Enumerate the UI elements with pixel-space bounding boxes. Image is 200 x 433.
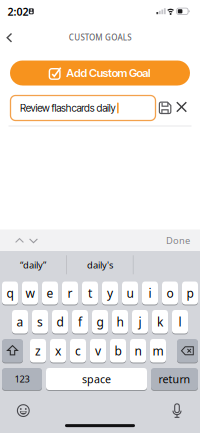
- button[interactable]: Shift: [2, 338, 23, 363]
- button[interactable]: daily's: [70, 255, 130, 275]
- button[interactable]: m: [150, 338, 166, 363]
- staticText: Add Custom Goal: [66, 66, 151, 80]
- button[interactable]: s: [32, 309, 48, 334]
- staticText: l: [178, 314, 181, 330]
- button[interactable]: q: [2, 281, 18, 305]
- button[interactable]: v: [90, 338, 106, 363]
- staticText: e: [46, 285, 53, 301]
- button[interactable]: a: [12, 309, 28, 334]
- staticText: c: [75, 343, 81, 359]
- staticText: h: [116, 314, 123, 330]
- button[interactable]: o: [162, 281, 178, 305]
- button[interactable]: Back: [4, 29, 16, 46]
- staticText: b: [114, 343, 121, 359]
- staticText: daily's: [87, 259, 113, 271]
- staticText: space: [82, 372, 111, 386]
- staticText: g: [96, 314, 103, 330]
- staticText: d: [56, 314, 63, 330]
- button[interactable]: l: [172, 309, 188, 334]
- button[interactable]: space: [46, 367, 147, 390]
- button[interactable]: return: [151, 367, 198, 390]
- button[interactable]: e: [42, 281, 58, 305]
- button[interactable]: y: [102, 281, 118, 305]
- staticText: y: [107, 285, 113, 301]
- staticText: j: [138, 314, 141, 330]
- button[interactable]: Cancel: [176, 101, 187, 112]
- staticText: “daily”: [20, 259, 46, 271]
- button[interactable]: f: [72, 309, 88, 334]
- button[interactable]: g: [92, 309, 108, 334]
- staticText: Review flashcards daily: [20, 102, 116, 114]
- button[interactable]: r: [62, 281, 78, 305]
- button[interactable]: t: [82, 281, 98, 305]
- button[interactable]: Next field: [29, 238, 38, 243]
- button[interactable]: Previous field: [15, 238, 24, 243]
- staticText: r: [67, 285, 72, 301]
- staticText: 123: [14, 373, 29, 385]
- button[interactable]: c: [70, 338, 86, 363]
- button[interactable]: Goal name: [10, 95, 155, 120]
- staticText: f: [78, 314, 82, 330]
- staticText: p: [186, 285, 193, 301]
- staticText: s: [37, 314, 43, 330]
- staticText: x: [55, 343, 61, 359]
- button[interactable]: k: [152, 309, 168, 334]
- button[interactable]: d: [52, 309, 68, 334]
- button[interactable]: Dictate: [171, 403, 182, 418]
- staticText: t: [88, 285, 92, 301]
- staticText: v: [95, 343, 101, 359]
- staticText: a: [16, 314, 23, 330]
- button[interactable]: Emoji: [17, 404, 30, 417]
- staticText: CUSTOM GOALS: [69, 32, 131, 43]
- button[interactable]: z: [30, 338, 46, 363]
- staticText: m: [152, 343, 163, 359]
- button[interactable]: b: [110, 338, 126, 363]
- button[interactable]: j: [132, 309, 148, 334]
- button[interactable]: p: [182, 281, 198, 305]
- button[interactable]: n: [130, 338, 146, 363]
- button[interactable]: Save: [159, 101, 172, 114]
- button[interactable]: “daily”: [3, 255, 63, 275]
- button[interactable]: 123: [2, 367, 42, 390]
- staticText: 2:02: [7, 4, 28, 19]
- button[interactable]: Add Custom Goal: [10, 60, 190, 85]
- button[interactable]: x: [50, 338, 66, 363]
- button[interactable]: i: [142, 281, 158, 305]
- button[interactable]: u: [122, 281, 138, 305]
- button[interactable]: Done: [163, 233, 193, 247]
- staticText: return: [158, 372, 190, 386]
- button[interactable]: w: [22, 281, 38, 305]
- button[interactable]: Delete: [177, 338, 198, 363]
- staticText: o: [166, 285, 173, 301]
- staticText: u: [126, 285, 133, 301]
- staticText: i: [148, 285, 151, 301]
- button[interactable]: h: [112, 309, 128, 334]
- staticText: w: [25, 285, 34, 301]
- staticText: q: [6, 285, 13, 301]
- staticText: z: [35, 343, 41, 359]
- staticText: Done: [166, 234, 190, 247]
- staticText: k: [157, 314, 163, 330]
- staticText: n: [134, 343, 141, 359]
